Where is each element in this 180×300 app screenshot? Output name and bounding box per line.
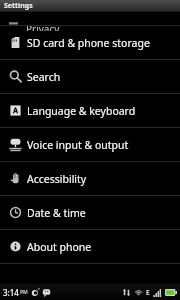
staticText: Language & keyboard — [27, 104, 136, 118]
staticText: Search — [27, 70, 61, 84]
button[interactable]: Search — [0, 60, 180, 93]
button[interactable]: Privacy — [0, 12, 180, 26]
staticText: E — [146, 288, 150, 297]
button[interactable]: Voice input & output — [0, 128, 180, 161]
button[interactable]: About phone — [0, 230, 180, 263]
button[interactable]: SD card & phone storage — [0, 26, 180, 59]
staticText: Privacy — [26, 22, 60, 31]
staticText: Settings — [4, 1, 33, 11]
button[interactable]: Accessibility — [0, 162, 180, 195]
staticText: SD card & phone storage — [27, 36, 150, 50]
staticText: Voice input & output — [27, 138, 129, 152]
button[interactable]: Date & time — [0, 196, 180, 229]
staticText: PM — [20, 289, 28, 296]
button[interactable]: Language & keyboard — [0, 94, 180, 127]
staticText: Date & time — [27, 206, 86, 220]
staticText: 3:14 — [3, 287, 19, 298]
staticText: Accessibility — [27, 172, 87, 186]
staticText: About phone — [27, 240, 92, 254]
